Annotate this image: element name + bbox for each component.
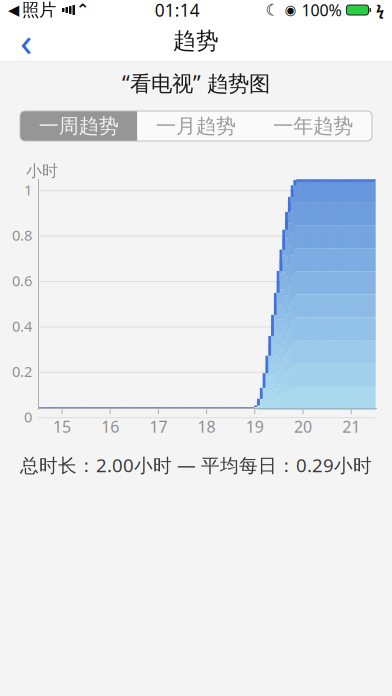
staticText: ◉ [284,2,296,17]
staticText: 19 [246,416,264,437]
staticText: 0.4 [12,316,32,336]
staticText: 15 [53,416,71,437]
staticText: 01:14 [155,0,200,21]
staticText: 总时长：2.00小时 — 平均每日：0.29小时 [20,453,372,477]
staticText: 100% [301,0,341,21]
button[interactable]: 一月趋势 [137,111,255,141]
staticText: 0.6 [12,271,32,290]
staticText: 趋势 [173,27,219,55]
staticText: 20 [294,416,312,437]
staticText: 17 [149,416,167,437]
staticText: ◀ [8,2,19,18]
staticText: ϟ [376,0,384,20]
staticText: 21 [342,416,360,437]
button[interactable]: 一周趋势 [20,111,137,141]
button[interactable]: 返回 [4,20,48,62]
staticText: 照片 [22,0,56,21]
staticText: 1 [24,180,32,199]
staticText: “看电视” 趋势图 [122,69,270,97]
staticText: 0 [24,407,32,426]
staticText: ☾ [265,1,279,19]
staticText: 0.8 [12,225,32,245]
button[interactable]: 一年趋势 [255,111,372,141]
staticText: 18 [198,416,216,437]
staticText: 小时 [26,161,58,181]
staticText: ⌃ [76,1,89,19]
staticText: 一月趋势 [156,114,236,138]
staticText: 一周趋势 [39,114,119,138]
staticText: ‹ [20,14,32,67]
staticText: 一年趋势 [273,114,353,138]
staticText: 16 [101,416,119,437]
staticText: 0.2 [12,362,32,381]
